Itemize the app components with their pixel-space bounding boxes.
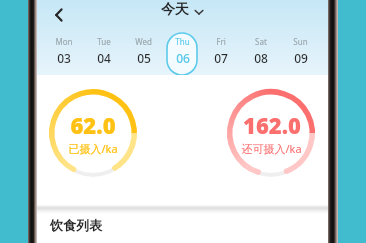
staticText: 07 [214, 50, 228, 66]
staticText: Wed [135, 36, 152, 47]
button[interactable]: Wed [126, 33, 160, 75]
staticText: Sat [255, 36, 267, 47]
staticText: 162.0 [243, 110, 301, 140]
button[interactable]: Sun [283, 33, 317, 75]
button[interactable]: Mon [47, 33, 81, 75]
button[interactable]: Back [44, 0, 74, 30]
button[interactable]: Tue [87, 33, 121, 75]
staticText: 09 [294, 50, 308, 66]
staticText: Mon [55, 36, 73, 47]
staticText: Fri [216, 36, 226, 47]
staticText: 05 [137, 50, 151, 66]
staticText: Thu [175, 36, 190, 47]
staticText: 04 [97, 50, 111, 66]
staticText: 03 [57, 50, 71, 66]
staticText: Sun [293, 36, 308, 47]
staticText: 62.0 [70, 110, 116, 140]
staticText: 已摄入/ka [68, 141, 118, 156]
staticText: Tue [97, 36, 111, 47]
button[interactable]: Fri [204, 33, 238, 75]
staticText: 还可摄入/ka [241, 141, 302, 156]
button[interactable]: Sat [244, 33, 278, 75]
button[interactable]: Thu [165, 33, 199, 75]
staticText: 今天 [161, 1, 189, 19]
staticText: 08 [254, 50, 268, 66]
button[interactable]: 今天 [161, 1, 204, 19]
staticText: 饮食列表 [50, 217, 102, 233]
staticText: 06 [176, 50, 190, 66]
